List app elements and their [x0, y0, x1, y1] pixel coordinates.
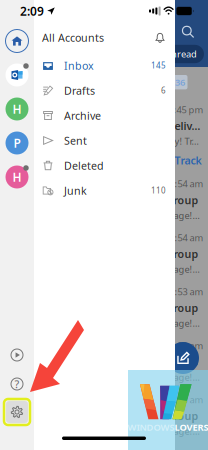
- staticText: Welcome to your group: [74, 301, 198, 315]
- staticText: 10:23 am: [164, 339, 203, 352]
- button[interactable]: Junk: [34, 178, 175, 203]
- staticText: Junk: [64, 183, 87, 198]
- staticText: H: [12, 101, 21, 117]
- staticText: Drafts: [64, 83, 95, 98]
- staticText: 10:23 am: [164, 393, 203, 406]
- staticText: All Accounts: [42, 30, 104, 45]
- staticText: 36: [175, 76, 185, 88]
- staticText: Say hi with your first message!…: [62, 317, 199, 329]
- staticText: Track: [174, 153, 201, 167]
- button[interactable]: Help: [5, 372, 29, 396]
- staticText: P: [13, 135, 20, 151]
- button[interactable]: Outlook account: [4, 62, 30, 88]
- button[interactable]: Archive: [34, 103, 175, 128]
- staticText: Say hi with your first message!…: [62, 263, 199, 275]
- button[interactable]: P: [4, 130, 30, 156]
- staticText: Sent: [64, 133, 87, 148]
- staticText: ?: [14, 377, 19, 391]
- button[interactable]: Deleted: [34, 153, 175, 178]
- staticText: Your package arrives today! Tr…: [62, 135, 198, 147]
- button[interactable]: Home: [4, 28, 30, 54]
- staticText: Say hi with your first message!…: [62, 371, 199, 383]
- staticText: LOVERS: [174, 421, 208, 433]
- staticText: Inbox: [64, 58, 94, 73]
- button[interactable]: Sent: [34, 128, 175, 153]
- staticText: Deleted: [64, 158, 104, 173]
- staticText: WINDOWS: [127, 421, 174, 433]
- staticText: 145: [151, 60, 166, 71]
- staticText: Say hi with your first message!…: [62, 425, 199, 437]
- button[interactable]: Unread: [157, 45, 204, 63]
- staticText: Welcome to your group: [74, 193, 198, 207]
- button[interactable]: Inbox: [34, 53, 175, 78]
- button[interactable]: Search: [178, 22, 198, 42]
- staticText: 2:09: [20, 3, 44, 19]
- staticText: 11:53 am: [164, 285, 203, 298]
- staticText: 11:54 am: [164, 177, 203, 190]
- button[interactable]: Settings: [4, 399, 30, 425]
- button[interactable]: Drafts: [34, 78, 175, 103]
- staticText: Welcome to your group: [74, 355, 198, 369]
- button[interactable]: H: [4, 164, 30, 190]
- button[interactable]: Notifications: [151, 28, 169, 47]
- staticText: Welcome to your group: [74, 409, 198, 423]
- staticText: Your order is out for deliv…: [56, 119, 200, 133]
- staticText: 110: [151, 185, 166, 196]
- staticText: 11:54 am: [164, 231, 203, 244]
- staticText: H: [12, 169, 21, 185]
- button[interactable]: H: [4, 96, 30, 122]
- staticText: 1:45 pm: [168, 103, 203, 116]
- staticText: Unread: [164, 48, 197, 60]
- staticText: Say hi with your first message!…: [62, 209, 199, 221]
- staticText: 6: [161, 85, 166, 96]
- button[interactable]: What's new: [5, 343, 29, 367]
- staticText: Archive: [64, 108, 101, 123]
- staticText: Welcome to your group: [74, 247, 198, 261]
